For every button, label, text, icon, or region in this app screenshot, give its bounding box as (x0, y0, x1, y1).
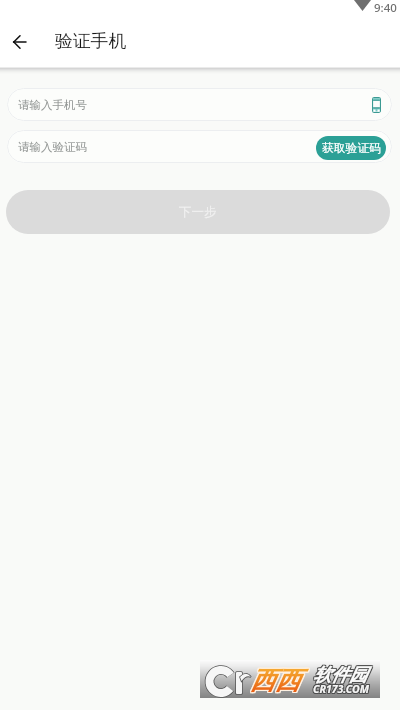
staticText: CR173.COM (314, 681, 370, 695)
staticText: CR173.COM (312, 683, 368, 697)
staticText: CR173.COM (314, 683, 370, 697)
staticText: 下一步 (179, 204, 217, 220)
staticText: 西西 (250, 665, 300, 696)
staticText: 软件园 (314, 665, 368, 688)
staticText: 西西 (249, 666, 299, 697)
staticText: 西西 (251, 665, 301, 696)
staticText: 西西 (249, 665, 299, 696)
staticText: CR173.COM (313, 682, 369, 696)
staticText: 西西 (251, 666, 301, 697)
staticText: 9:40 (374, 0, 397, 16)
staticText: 软件园 (312, 664, 366, 687)
button[interactable]: 获取验证码 (316, 136, 386, 160)
staticText: 请输入手机号 (18, 98, 87, 112)
staticText: 西西 (250, 664, 300, 695)
staticText: 软件园 (312, 663, 366, 686)
staticText: 软件园 (313, 665, 367, 688)
staticText: CR173.COM (313, 683, 369, 697)
staticText: CR173.COM (312, 681, 368, 695)
button[interactable]: Back (3, 26, 35, 58)
button[interactable]: 请输入验证码 (7, 130, 392, 163)
staticText: CR173.COM (314, 682, 370, 696)
staticText: 软件园 (313, 664, 367, 687)
staticText: 软件园 (312, 665, 366, 688)
button[interactable]: 请输入手机号 (7, 88, 392, 121)
staticText: 获取验证码 (322, 141, 381, 156)
staticText: CR173.COM (312, 682, 368, 696)
staticText: 西西 (249, 664, 299, 695)
staticText: 西西 (251, 664, 301, 695)
staticText: 软件园 (314, 664, 368, 687)
staticText: 验证手机 (55, 30, 127, 52)
staticText: 软件园 (313, 663, 367, 686)
staticText: 软件园 (314, 663, 368, 686)
staticText: 西西 (250, 666, 300, 697)
staticText: CR173.COM (313, 681, 369, 695)
button[interactable]: 下一步 (6, 190, 390, 234)
staticText: 请输入验证码 (18, 140, 87, 154)
